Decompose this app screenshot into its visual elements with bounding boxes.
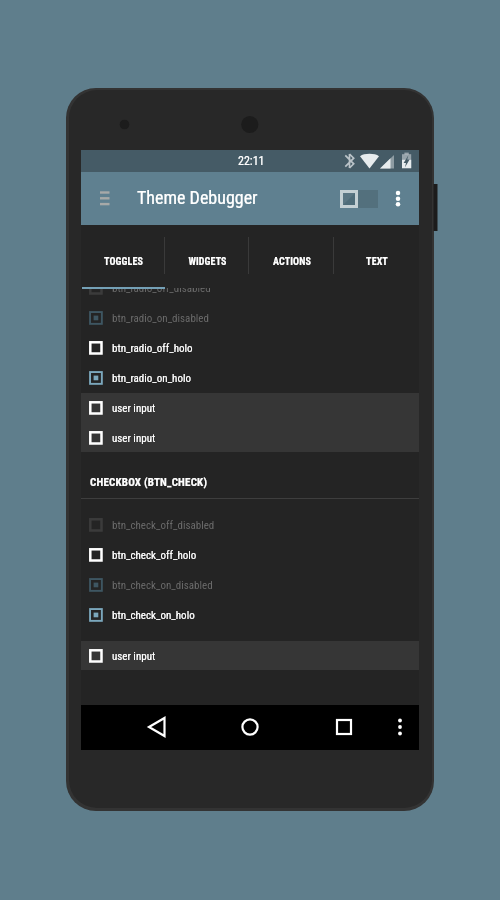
staticText: btn_check_on_holo [112, 609, 195, 622]
staticText: btn_check_on_disabled [112, 579, 213, 592]
staticText: 22:11 [238, 154, 265, 168]
button[interactable]: TEXT [334, 226, 419, 288]
button[interactable]: btn_check_off_disabled [81, 510, 419, 540]
button[interactable]: btn_radio_on_disabled [81, 303, 419, 333]
button[interactable]: ACTIONS [249, 226, 334, 288]
staticText: TOGGLES [104, 256, 143, 268]
button[interactable]: btn_radio_off_holo [81, 333, 419, 363]
button[interactable]: WIDGETS [165, 226, 249, 288]
staticText: btn_radio_on_disabled [112, 312, 209, 325]
button[interactable]: btn_check_on_disabled [81, 570, 419, 600]
button[interactable]: user input [81, 641, 419, 671]
button[interactable]: More options [388, 184, 408, 213]
staticText: Theme Debugger [137, 187, 258, 208]
button[interactable]: user input [81, 423, 419, 453]
button[interactable]: btn_check_on_holo [81, 600, 419, 630]
button[interactable]: Navigation menu [100, 186, 110, 211]
staticText: WIDGETS [188, 256, 227, 268]
button[interactable]: btn_radio_on_holo [81, 363, 419, 393]
staticText: CHECKBOX (BTN_CHECK) [90, 476, 208, 489]
staticText: btn_radio_off_holo [112, 342, 193, 355]
staticText: btn_check_off_disabled [112, 519, 215, 532]
button[interactable]: btn_check_off_holo [81, 540, 419, 570]
staticText: user input [112, 432, 156, 445]
staticText: user input [112, 402, 156, 415]
button[interactable]: Toggle theme [340, 190, 378, 208]
button[interactable]: user input [81, 393, 419, 423]
staticText: btn_radio_on_holo [112, 372, 192, 385]
staticText: btn_radio_off_disabled [112, 282, 211, 295]
staticText: TEXT [366, 256, 388, 268]
button[interactable]: btn_radio_off_disabled [81, 273, 419, 303]
staticText: ACTIONS [273, 256, 311, 268]
staticText: user input [112, 650, 156, 663]
button[interactable]: TOGGLES [81, 226, 165, 288]
staticText: btn_check_off_holo [112, 549, 197, 562]
